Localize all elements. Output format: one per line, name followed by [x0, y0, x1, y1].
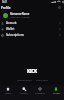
button[interactable]: Privacy Policy: [36, 79, 48, 82]
staticText: StreamerName: [10, 12, 30, 16]
staticText: View your channel: [10, 16, 30, 19]
staticText: Home: [5, 92, 11, 95]
staticText: Profile: [1, 6, 11, 10]
staticText: Browse: [20, 92, 28, 95]
button[interactable]: Home: [0, 85, 16, 100]
staticText: 9:41: [2, 0, 8, 4]
button[interactable]: StreamerName: [1, 11, 62, 19]
staticText: Following: [35, 92, 45, 95]
staticText: KICK: [27, 68, 37, 74]
staticText: Profile: [53, 92, 60, 95]
staticText: Account: [6, 21, 17, 25]
staticText: Subscriptions: [6, 33, 24, 37]
button[interactable]: Account: [1, 20, 61, 26]
button[interactable]: Following: [32, 85, 48, 100]
button[interactable]: Profile: [48, 85, 64, 100]
button[interactable]: Terms of Service: [17, 79, 32, 82]
button[interactable]: Browse: [16, 85, 32, 100]
button[interactable]: Settings: [57, 5, 62, 10]
staticText: Wallet: [6, 27, 15, 31]
button[interactable]: Wallet: [1, 26, 61, 32]
button[interactable]: Subscriptions: [1, 32, 61, 38]
